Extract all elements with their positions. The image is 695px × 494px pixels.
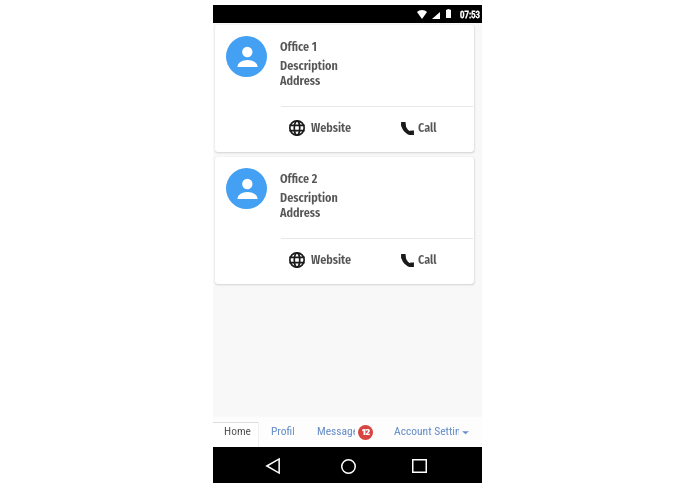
button[interactable]: Recents	[403, 452, 435, 480]
button[interactable]: Website	[289, 246, 352, 274]
button[interactable]: Account Settings	[394, 422, 469, 447]
staticText: Description	[280, 191, 338, 205]
button[interactable]: Call	[401, 246, 437, 274]
staticText: 07:53	[460, 10, 480, 21]
staticText: 12	[362, 427, 370, 438]
button[interactable]: Home	[213, 422, 259, 447]
button[interactable]: Call	[401, 114, 437, 142]
staticText: Call	[418, 121, 437, 135]
button[interactable]: Back	[257, 452, 289, 480]
staticText: Office 2	[280, 172, 318, 186]
staticText: Address	[280, 74, 321, 88]
button[interactable]: Home	[332, 452, 364, 480]
staticText: Website	[311, 253, 352, 267]
button[interactable]: Office 2	[215, 157, 474, 284]
button[interactable]: Profile	[271, 422, 317, 447]
staticText: Account Settings	[394, 424, 459, 437]
staticText: Call	[418, 253, 437, 267]
staticText: Home	[224, 424, 251, 437]
staticText: Description	[280, 59, 338, 73]
staticText: Profile	[271, 424, 294, 437]
staticText: Messages	[317, 424, 355, 437]
button[interactable]: Website	[289, 114, 352, 142]
staticText: Office 1	[280, 40, 317, 54]
staticText: Website	[311, 121, 352, 135]
button[interactable]: Office 1	[215, 25, 474, 152]
button[interactable]: Messages	[317, 422, 373, 447]
staticText: Address	[280, 206, 321, 220]
